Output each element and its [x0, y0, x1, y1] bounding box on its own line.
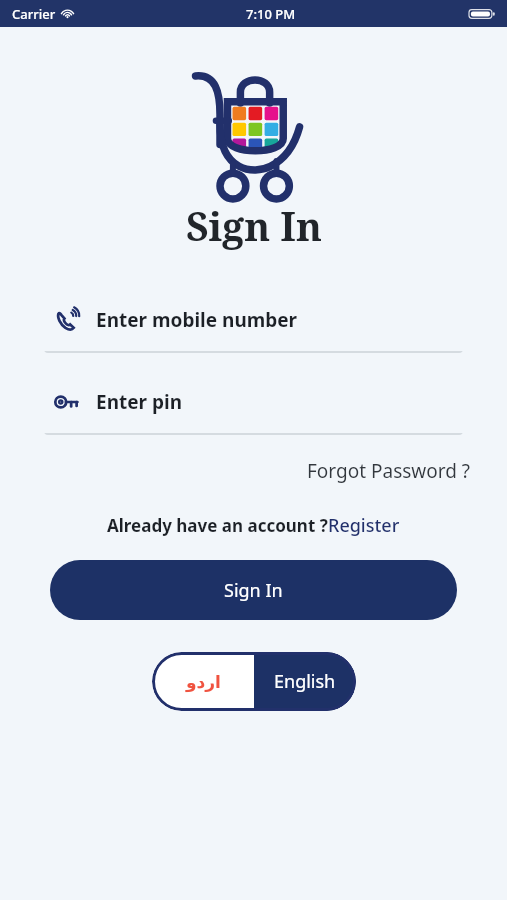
button[interactable]: English — [254, 652, 356, 711]
button[interactable]: اردو — [152, 652, 254, 711]
staticText: English — [274, 669, 336, 694]
button[interactable]: Mobile number — [44, 296, 463, 353]
other: PIN — [54, 389, 80, 415]
staticText: Enter pin — [96, 389, 183, 415]
staticText: Sign In — [186, 199, 322, 252]
other: Mobile number — [54, 307, 80, 333]
button[interactable]: PIN — [44, 378, 463, 435]
staticText: 7:10 PM — [246, 5, 296, 23]
staticText: Forgot Password ? — [307, 458, 471, 484]
staticText: Enter mobile number — [96, 307, 298, 333]
button[interactable]: Sign In — [50, 560, 457, 620]
staticText: Already have an account ? — [107, 514, 328, 537]
button[interactable]: Register — [328, 513, 400, 538]
staticText: اردو — [186, 672, 221, 692]
staticText: Register — [328, 513, 400, 538]
button[interactable]: Forgot Password ? — [303, 453, 475, 489]
staticText: Sign In — [224, 578, 283, 603]
staticText: Carrier — [12, 5, 56, 23]
